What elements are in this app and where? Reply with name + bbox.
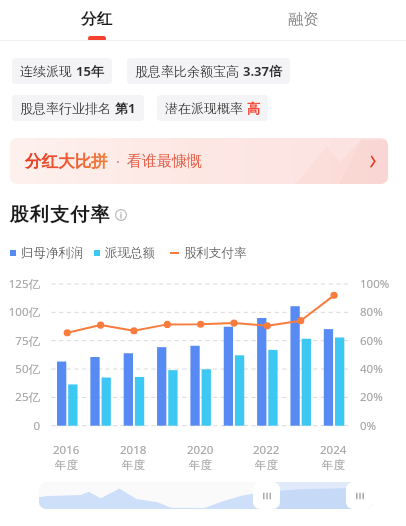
staticText: 2022 (253, 442, 280, 458)
staticText: 75亿 (0, 333, 40, 349)
staticText: 2024 (320, 442, 347, 458)
staticText: 2018 (120, 442, 147, 458)
staticText: 100亿 (0, 304, 40, 320)
staticText: 60% (360, 333, 383, 349)
staticText: 2016 (53, 442, 80, 458)
staticText: 125亿 (0, 276, 40, 292)
staticText: 股利支付率 (9, 203, 110, 227)
button[interactable]: Info (115, 209, 127, 221)
button[interactable]: Range end handle (346, 482, 373, 509)
button[interactable]: 分红 (56, 0, 136, 41)
staticText: 20% (360, 389, 383, 405)
staticText: 3.37倍 (243, 62, 282, 80)
staticText: 50亿 (0, 361, 40, 377)
staticText: 股息率行业排名 (20, 99, 115, 117)
staticText: 40% (360, 361, 383, 377)
staticText: 股利支付率 (184, 245, 247, 261)
staticText: 0 (0, 418, 40, 434)
button[interactable]: Range start handle (253, 482, 280, 509)
staticText: 连续派现 (20, 62, 76, 80)
staticText: 年度 (122, 458, 145, 472)
staticText: 年度 (255, 458, 278, 472)
button[interactable]: 潜在派现概率 (157, 95, 268, 121)
staticText: · (116, 152, 120, 171)
staticText: 100% (360, 276, 390, 292)
staticText: 25亿 (0, 389, 40, 405)
button[interactable]: 股息率比余额宝高 (127, 58, 290, 84)
staticText: 分红 (81, 9, 112, 29)
staticText: 15年 (76, 62, 104, 80)
staticText: 股息率比余额宝高 (135, 62, 243, 80)
button[interactable]: 融资 (263, 0, 343, 41)
staticText: 派现总额 (105, 245, 155, 261)
staticText: 高 (247, 100, 260, 116)
staticText: 分红大比拼 (25, 151, 108, 172)
button[interactable]: 股息率行业排名 (12, 95, 144, 121)
staticText: 年度 (55, 458, 78, 472)
staticText: 80% (360, 304, 383, 320)
button[interactable]: 连续派现 (12, 58, 112, 84)
staticText: 年度 (322, 458, 345, 472)
staticText: 2020 (187, 442, 214, 458)
staticText: 看谁最慷慨 (127, 152, 202, 171)
staticText: 归母净利润 (21, 245, 84, 261)
staticText: 年度 (189, 458, 212, 472)
staticText: 融资 (288, 10, 318, 29)
staticText: 0% (360, 418, 377, 434)
staticText: 潜在派现概率 (165, 99, 247, 117)
staticText: 第1 (115, 99, 136, 117)
button[interactable]: 分红大比拼 (10, 138, 388, 184)
